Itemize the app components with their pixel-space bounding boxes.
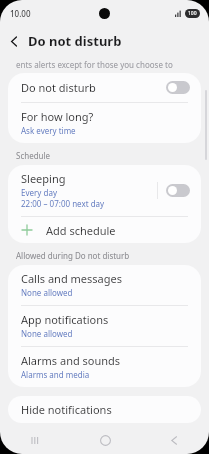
staticText: Allowed during Do not disturb <box>16 250 130 261</box>
staticText: Schedule <box>16 150 51 161</box>
staticText: Alarms and sounds <box>21 353 121 368</box>
button[interactable]: Back <box>0 27 28 55</box>
staticText: 10.00 <box>10 8 31 19</box>
staticText: ents alerts except for those you choose … <box>16 59 195 70</box>
button[interactable]: For how long? <box>8 103 201 143</box>
staticText: Alarms and media <box>21 369 90 380</box>
staticText: Every day <box>21 187 57 198</box>
button[interactable]: Sleeping <box>8 165 201 216</box>
staticText: Ask every time <box>21 125 76 136</box>
staticText: Sleeping <box>21 171 66 186</box>
staticText: App notifications <box>21 312 109 327</box>
staticText: None allowed <box>21 328 73 339</box>
button[interactable]: Calls and messages <box>8 265 201 305</box>
staticText: Do not disturb <box>21 80 96 95</box>
staticText: 100 <box>188 10 197 17</box>
staticText: 22:00 – 07:00 next day <box>21 198 105 209</box>
button[interactable]: Recents <box>18 427 52 454</box>
button[interactable]: Hide notifications <box>8 396 201 423</box>
staticText: Add schedule <box>46 223 116 238</box>
staticText: Do not disturb <box>28 32 122 50</box>
button[interactable]: Home <box>88 427 122 454</box>
staticText: Hide notifications <box>21 402 112 417</box>
button[interactable]: Do not disturb <box>8 73 201 102</box>
button[interactable]: Add schedule <box>8 217 201 243</box>
button[interactable]: Alarms and sounds <box>8 347 201 387</box>
button[interactable]: Back <box>157 427 191 454</box>
staticText: Calls and messages <box>21 271 122 286</box>
staticText: For how long? <box>21 109 94 124</box>
staticText: None allowed <box>21 287 73 298</box>
button[interactable]: App notifications <box>8 306 201 346</box>
